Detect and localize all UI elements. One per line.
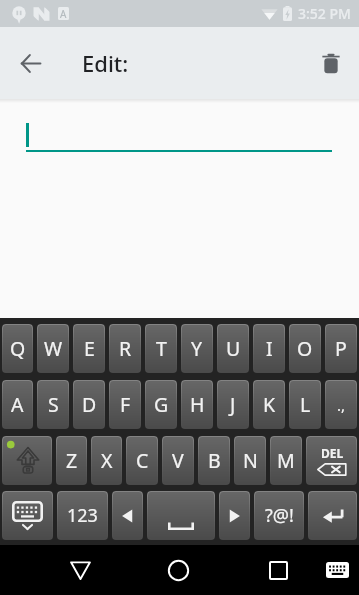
staticText: W [44, 335, 63, 362]
button[interactable]: Q [2, 324, 33, 373]
staticText: 3:52 PM [298, 4, 351, 23]
button[interactable]: V [162, 436, 194, 485]
staticText: S [48, 391, 59, 418]
button[interactable]: E [73, 324, 105, 373]
button[interactable]: Delete [306, 436, 357, 485]
staticText: U [226, 335, 241, 362]
staticText: Q [10, 335, 26, 362]
staticText: P [335, 335, 347, 362]
button[interactable]: L [289, 380, 321, 429]
staticText: V [172, 447, 184, 474]
staticText: A [11, 391, 24, 418]
button[interactable]: Y [181, 324, 213, 373]
button[interactable]: Home [154, 545, 202, 595]
button[interactable]: ., [325, 380, 357, 429]
button[interactable]: P [325, 324, 357, 373]
staticText: 123 [67, 503, 98, 528]
staticText: X [101, 447, 113, 474]
staticText: H [190, 391, 205, 418]
button[interactable]: J [217, 380, 249, 429]
staticText: A [60, 7, 67, 20]
staticText: ?@! [265, 503, 294, 528]
button[interactable]: N [234, 436, 266, 485]
staticText: B [208, 447, 221, 474]
button[interactable]: Recent apps [254, 545, 302, 595]
staticText: M [277, 447, 295, 474]
staticText: I [266, 335, 273, 362]
button[interactable]: ?@! [254, 491, 304, 540]
staticText: J [230, 391, 236, 418]
staticText: G [154, 391, 169, 418]
staticText: N [243, 447, 258, 474]
button[interactable]: Shift [2, 436, 52, 485]
button[interactable]: B [198, 436, 230, 485]
button[interactable]: Move left [112, 491, 143, 540]
button[interactable]: Hide keyboard [2, 491, 53, 540]
button[interactable]: X [91, 436, 122, 485]
staticText: ., [337, 395, 346, 415]
button[interactable]: Back [56, 545, 104, 595]
button[interactable]: Delete [303, 27, 359, 99]
button[interactable]: C [126, 436, 158, 485]
staticText: R [119, 335, 132, 362]
button[interactable]: Switch keyboard [316, 545, 359, 595]
button[interactable]: Move right [219, 491, 250, 540]
button[interactable]: D [73, 380, 105, 429]
button[interactable]: W [37, 324, 69, 373]
button[interactable]: K [253, 380, 285, 429]
staticText: Edit: [82, 48, 129, 78]
staticText: Z [66, 447, 78, 474]
button[interactable]: O [289, 324, 321, 373]
button[interactable]: A [2, 380, 33, 429]
button[interactable]: U [217, 324, 249, 373]
staticText: D [82, 391, 97, 418]
button[interactable]: M [270, 436, 302, 485]
button[interactable]: I [253, 324, 285, 373]
button[interactable]: F [109, 380, 141, 429]
button[interactable]: Space [147, 491, 215, 540]
staticText: L [300, 391, 311, 418]
staticText: DEL [321, 445, 344, 461]
button[interactable]: Enter [308, 491, 357, 540]
button[interactable]: T [145, 324, 177, 373]
staticText: F [120, 391, 131, 418]
staticText: C [136, 447, 149, 474]
button[interactable]: S [37, 380, 69, 429]
staticText: K [263, 391, 276, 418]
button[interactable]: 123 [57, 491, 108, 540]
staticText: O [297, 335, 313, 362]
staticText: Y [191, 335, 203, 362]
button[interactable]: G [145, 380, 177, 429]
button[interactable]: Navigate up [0, 27, 62, 99]
staticText: T [156, 335, 167, 362]
button[interactable]: R [109, 324, 141, 373]
button[interactable]: Z [56, 436, 87, 485]
button[interactable]: H [181, 380, 213, 429]
staticText: E [84, 335, 95, 362]
